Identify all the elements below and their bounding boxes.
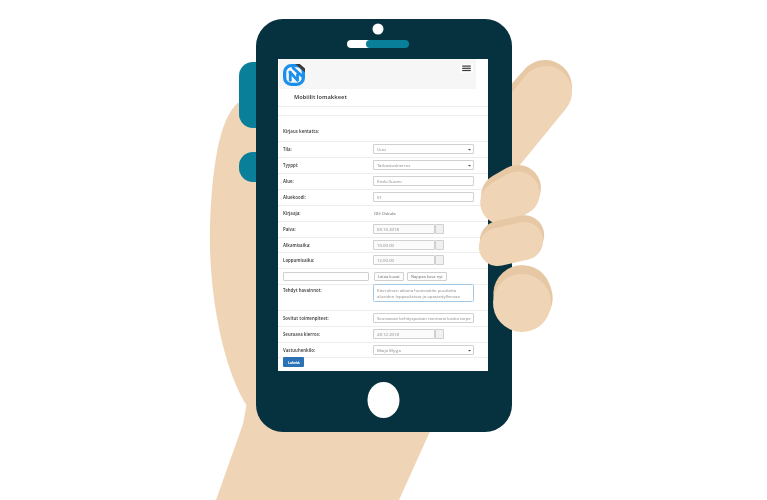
staticText: Mobiilit lomakkeet (294, 93, 347, 101)
staticText: 28.12.2018 (377, 331, 399, 337)
staticText: Aluekoodi: (283, 194, 306, 200)
staticText: Tehdyt havainnot: (283, 287, 322, 293)
button[interactable]: Keski-Suomi (373, 176, 474, 186)
button[interactable]: Loppumisaika: (278, 252, 488, 268)
staticText: Tarkastuskierros (377, 162, 411, 168)
button[interactable]: Menu (460, 64, 473, 73)
staticText: Kirjaus kentatta: (283, 128, 319, 134)
button[interactable]: Sovitut toimenpiteet: (278, 310, 488, 326)
staticText: Kierroksen aikana huomattiin puutteita a… (377, 287, 460, 299)
button[interactable]: Lahetä (283, 357, 304, 367)
button[interactable]: Pick date (435, 255, 444, 265)
button[interactable]: Pick date (435, 240, 444, 250)
staticText: Seuraavan kehityspaivan teemana koska ta… (377, 315, 471, 321)
staticText: Vastuuhenkilo: (283, 347, 316, 353)
button[interactable]: 28.12.2018 (373, 329, 435, 339)
button[interactable]: Alkamisaika: (278, 237, 488, 253)
staticText: Keski-Suomi (377, 178, 402, 184)
staticText: Alue: (283, 178, 294, 184)
button[interactable]: Pick date (435, 329, 444, 339)
staticText: Nappaa kuva nyt (411, 274, 443, 279)
button[interactable]: 01 (373, 192, 474, 202)
button[interactable]: Kirjaaja: (278, 205, 488, 221)
staticText: Sovitut toimenpiteet: (283, 315, 329, 321)
button[interactable]: Maija Myyja (373, 345, 474, 355)
button[interactable]: Choose file (283, 272, 369, 281)
staticText: Seuraava kierros: (283, 331, 321, 337)
staticText: Uusi (377, 146, 386, 152)
staticText: Alkamisaika: (283, 242, 311, 248)
button[interactable]: 12.00.00 (373, 255, 435, 265)
button[interactable]: Lataa kuvat (374, 272, 404, 281)
button[interactable]: 09.10.2018 (373, 224, 435, 234)
button[interactable]: Nappaa kuva nyt (407, 272, 447, 281)
staticText: 12.00.00 (377, 257, 395, 263)
button[interactable]: Paiva: (278, 221, 488, 237)
staticText: Tyyppi: (283, 162, 299, 168)
staticText: Lataa kuvat (378, 274, 400, 279)
button[interactable]: Pick date (435, 224, 444, 234)
button[interactable]: Vastuuhenkilo: (278, 342, 488, 357)
staticText: 10.00.00 (377, 242, 395, 248)
button[interactable]: Alue: (278, 173, 488, 189)
staticText: 09.10.2018 (377, 226, 399, 232)
button[interactable]: Seuraava kierros: (278, 326, 488, 342)
button[interactable]: 10.00.00 (373, 240, 435, 250)
staticText: Loppumisaika: (283, 257, 315, 263)
button[interactable]: Tarkastuskierros (373, 160, 474, 170)
button[interactable]: Tyyppi: (278, 157, 488, 173)
staticText: 01 (377, 194, 382, 200)
button[interactable]: Uusi (373, 144, 474, 154)
staticText: Olli Oskula (374, 210, 396, 216)
button[interactable]: Seuraavan kehityspaivan teemana koska ta… (373, 313, 474, 323)
staticText: Maija Myyja (377, 347, 401, 353)
button[interactable]: Kierroksen aikana huomattiin puutteita a… (373, 284, 474, 302)
staticText: Kirjaaja: (283, 210, 301, 216)
staticText: Paiva: (283, 226, 296, 232)
staticText: Lahetä (288, 360, 300, 365)
button[interactable]: Tila: (278, 141, 488, 157)
button[interactable]: Aluekoodi: (278, 189, 488, 205)
staticText: Tila: (283, 146, 292, 152)
